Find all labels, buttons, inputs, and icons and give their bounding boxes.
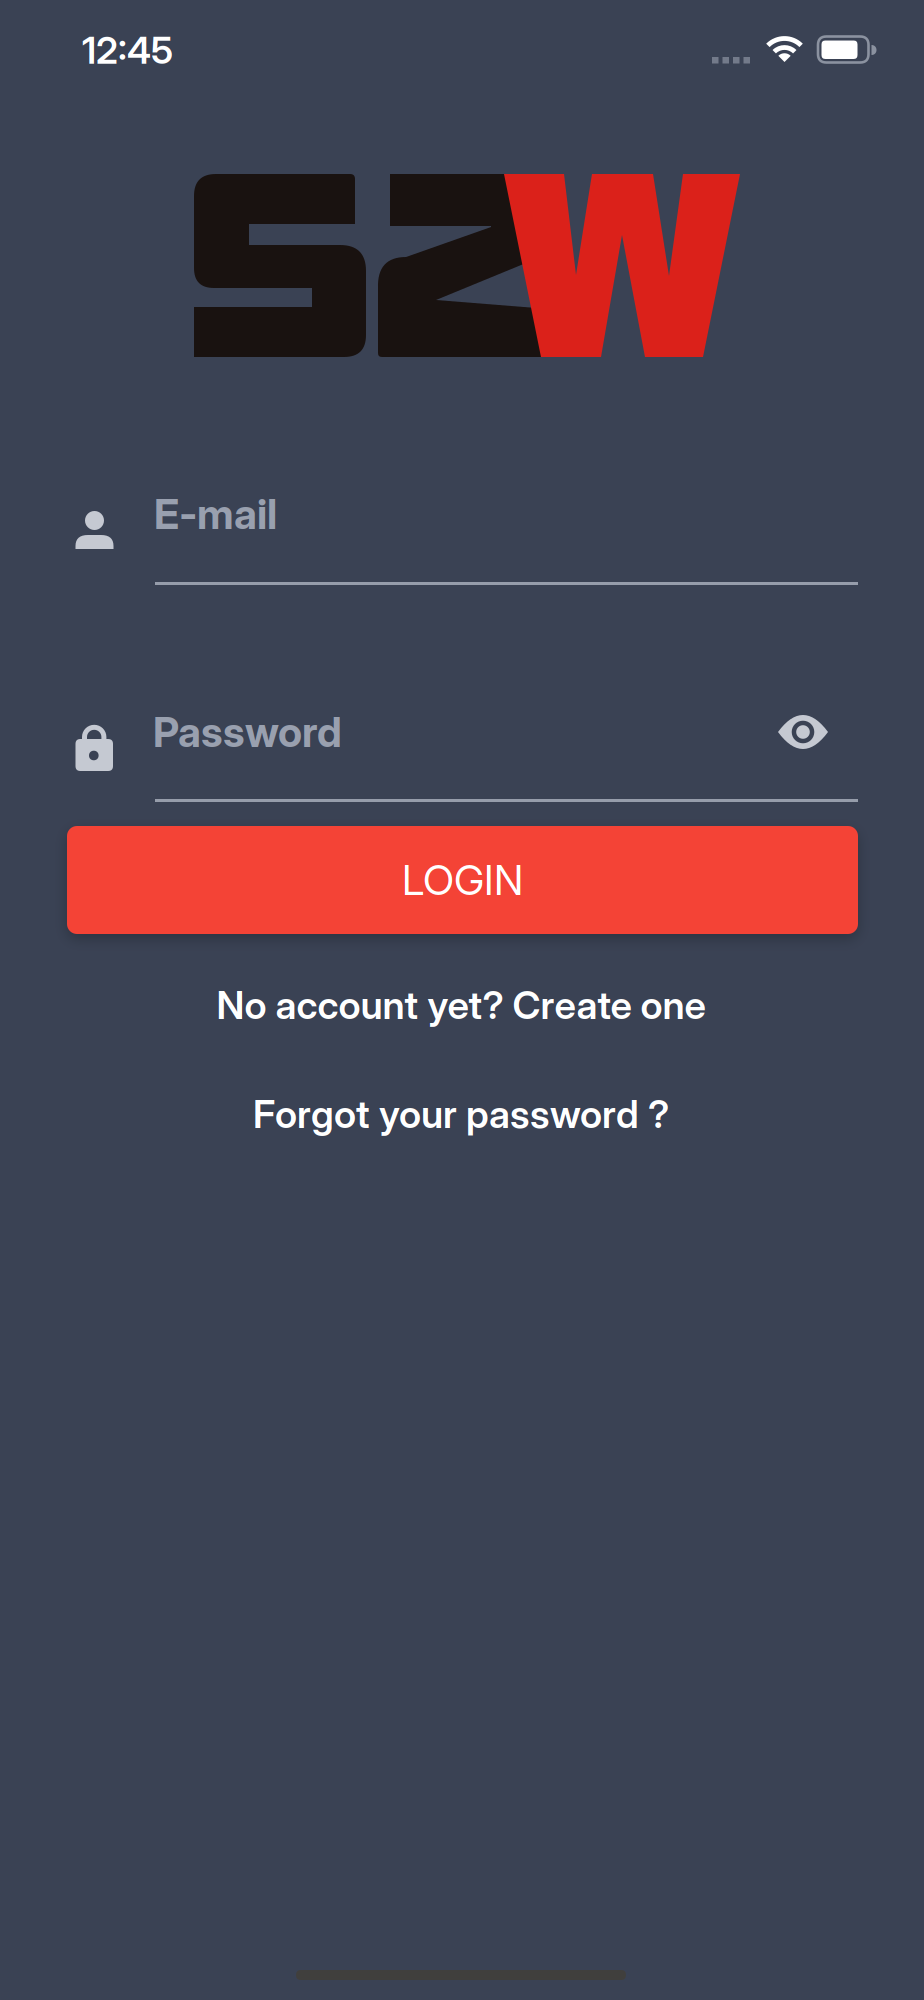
- button[interactable]: Show password: [771, 707, 835, 757]
- staticText: 12:45: [82, 27, 173, 73]
- button[interactable]: E-mail: [62, 480, 862, 590]
- staticText: Password: [153, 707, 342, 757]
- button[interactable]: LOGIN: [67, 826, 858, 934]
- button[interactable]: Forgot your password ?: [253, 1091, 669, 1137]
- staticText: No account yet? Create one: [216, 982, 705, 1028]
- button[interactable]: Password: [62, 700, 862, 810]
- staticText: E-mail: [154, 489, 277, 539]
- staticText: LOGIN: [402, 855, 523, 905]
- staticText: Forgot your password ?: [253, 1091, 669, 1137]
- button[interactable]: No account yet? Create one: [216, 982, 705, 1028]
